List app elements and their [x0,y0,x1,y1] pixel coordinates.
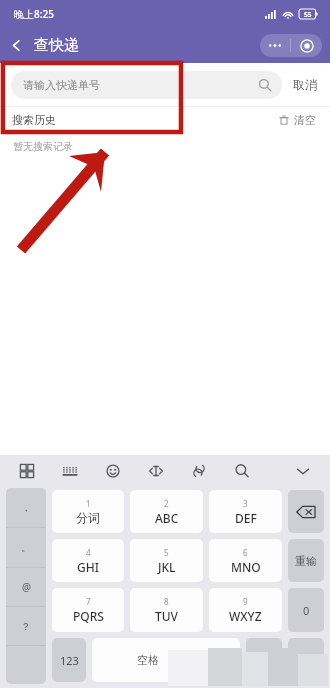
button[interactable]: More [260,34,290,57]
button[interactable]: 2 [130,490,203,533]
staticText: JKL [158,559,176,575]
button[interactable]: ， [6,488,46,527]
button[interactable]: Move cursor [143,458,169,484]
staticText: 3 [243,498,248,509]
staticText: 分词 [76,510,100,525]
button[interactable]: Hide keyboard [290,458,316,484]
button[interactable]: Keyboard layout [57,458,83,484]
staticText: MNO [231,559,261,575]
staticText: 晚上8:25 [14,7,54,21]
staticText: GHI [77,559,99,575]
button[interactable]: Attachment [186,458,212,484]
staticText: 8 [164,596,169,607]
button[interactable]: ？ [6,607,46,645]
staticText: 重输 [295,554,317,568]
button[interactable]: Clear history [277,109,318,131]
button[interactable]: 取消 [282,71,319,98]
button[interactable]: Backspace [288,490,324,533]
button[interactable]: Search [229,458,255,484]
staticText: 查快递 [34,36,79,55]
button[interactable]: Enter [288,638,324,682]
button[interactable]: 123 [52,638,86,682]
staticText: 清空 [294,113,316,127]
button[interactable]: Grid [14,458,40,484]
button[interactable]: 4 [52,539,124,582]
staticText: 。 [21,541,31,554]
button[interactable]: 9 [209,588,282,632]
button[interactable]: Emoji [100,458,126,484]
button[interactable]: 空格 [92,638,240,682]
staticText: @ [22,580,31,594]
button[interactable]: 6 [209,539,282,582]
staticText: 9 [243,596,248,607]
staticText: 4 [86,547,91,558]
staticText: 搜索历史 [12,113,56,127]
button[interactable]: 8 [130,588,203,632]
staticText: 6 [243,547,248,558]
button[interactable]: Close [291,34,322,57]
button[interactable]: 7 [52,588,124,632]
button[interactable]: 1 [52,490,124,533]
staticText: 0 [303,603,310,618]
other: Back [10,39,23,52]
staticText: 123 [60,653,79,668]
button[interactable]: 3 [209,490,282,533]
button[interactable]: Back [0,36,87,55]
staticText: 请输入快递单号 [23,78,258,92]
staticText: 5 [164,547,169,558]
staticText: 55 [304,10,312,19]
staticText: 2 [164,498,169,509]
staticText: DEF [235,510,257,526]
staticText: 7 [86,596,91,607]
staticText: 取消 [293,77,317,92]
button[interactable]: 5 [130,539,203,582]
staticText: 空格 [137,653,159,667]
other: Search [258,78,272,92]
staticText: ABC [155,510,179,526]
button[interactable]: Punctuation [246,638,282,682]
other: Clear history [279,115,289,125]
staticText: PQRS [73,608,104,624]
staticText: 1 [86,498,91,509]
staticText: TUV [155,608,178,624]
button[interactable]: @ [6,568,46,606]
staticText: WXYZ [229,608,262,624]
staticText: ， [21,501,31,514]
staticText: 暂无搜索记录 [13,140,73,153]
button[interactable]: 重输 [288,539,324,582]
button[interactable]: 请输入快递单号 [11,71,282,99]
staticText: ？ [21,620,31,633]
button[interactable]: 0 [288,588,324,632]
